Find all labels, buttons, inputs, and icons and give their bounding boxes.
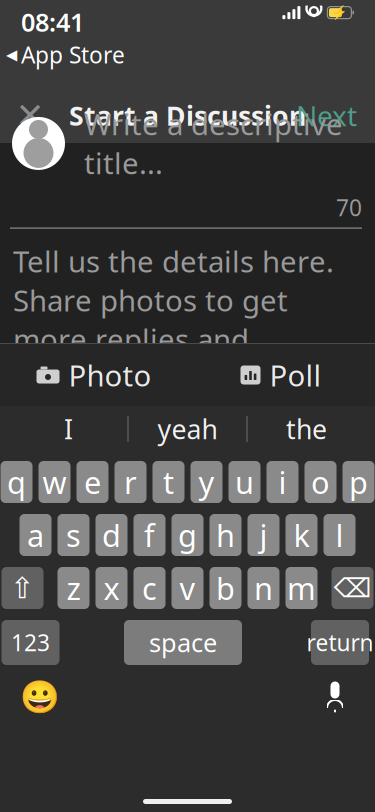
staticText: n: [254, 568, 273, 608]
staticText: x: [103, 568, 119, 608]
button[interactable]: Photo: [0, 344, 187, 406]
staticText: h: [216, 515, 235, 555]
button[interactable]: Shift: [1, 567, 43, 609]
button[interactable]: m: [285, 567, 317, 609]
staticText: 😀: [20, 679, 60, 715]
staticText: u: [235, 462, 254, 502]
button[interactable]: Next: [282, 89, 371, 141]
button[interactable]: l: [323, 514, 355, 556]
staticText: i: [278, 462, 286, 502]
button[interactable]: y: [190, 461, 222, 503]
button[interactable]: k: [285, 514, 317, 556]
staticText: ✕: [15, 96, 44, 135]
button[interactable]: b: [209, 567, 241, 609]
staticText: Start a Discussion: [69, 98, 306, 133]
button[interactable]: Dictate: [312, 677, 358, 717]
button[interactable]: return: [306, 620, 373, 665]
button[interactable]: o: [304, 461, 336, 503]
staticText: t: [163, 462, 174, 502]
staticText: 70: [336, 192, 362, 222]
button[interactable]: u: [228, 461, 260, 503]
staticText: ◀: [6, 46, 17, 63]
staticText: I: [64, 411, 73, 447]
staticText: ⌫: [333, 573, 371, 603]
staticText: q: [7, 462, 26, 502]
staticText: App Store: [21, 40, 125, 70]
staticText: l: [335, 515, 343, 555]
staticText: w: [42, 462, 66, 502]
button[interactable]: d: [95, 514, 127, 556]
staticText: s: [66, 515, 81, 555]
staticText: return: [306, 627, 373, 657]
staticText: v: [179, 568, 195, 608]
staticText: f: [144, 515, 155, 555]
button[interactable]: h: [209, 514, 241, 556]
button[interactable]: n: [247, 567, 279, 609]
staticText: d: [102, 515, 121, 555]
button[interactable]: q: [0, 461, 32, 503]
staticText: k: [293, 515, 309, 555]
staticText: g: [178, 515, 197, 555]
staticText: y: [198, 462, 214, 502]
button[interactable]: Emoji: [17, 677, 63, 717]
staticText: Write a descriptive title...: [84, 104, 343, 182]
staticText: Photo: [68, 355, 151, 394]
button[interactable]: 123: [1, 620, 59, 665]
button[interactable]: z: [57, 567, 89, 609]
staticText: o: [311, 462, 330, 502]
button[interactable]: yeah: [128, 406, 246, 452]
staticText: r: [124, 462, 137, 502]
staticText: 123: [11, 627, 50, 657]
button[interactable]: I: [9, 406, 127, 452]
staticText: Poll: [269, 355, 321, 394]
staticText: a: [27, 515, 44, 555]
button[interactable]: c: [133, 567, 165, 609]
button[interactable]: ◀: [6, 40, 125, 70]
staticText: Next: [296, 97, 357, 134]
staticText: b: [216, 568, 235, 608]
staticText: z: [66, 568, 80, 608]
button[interactable]: Delete: [331, 567, 373, 609]
button[interactable]: the: [247, 406, 365, 452]
staticText: the: [286, 411, 327, 447]
staticText: space: [149, 626, 217, 659]
button[interactable]: space: [124, 620, 242, 665]
staticText: Tell us the details here. Share photos t…: [13, 242, 334, 397]
staticText: j: [259, 515, 267, 555]
button[interactable]: Poll: [187, 344, 374, 406]
button[interactable]: i: [266, 461, 298, 503]
button[interactable]: a: [19, 514, 51, 556]
staticText: m: [287, 568, 316, 608]
button[interactable]: j: [247, 514, 279, 556]
button[interactable]: v: [171, 567, 203, 609]
button[interactable]: Close: [4, 89, 56, 141]
button[interactable]: x: [95, 567, 127, 609]
staticText: 08:41: [21, 5, 84, 39]
staticText: e: [84, 462, 101, 502]
button[interactable]: t: [152, 461, 184, 503]
button[interactable]: w: [38, 461, 70, 503]
staticText: yeah: [157, 411, 217, 447]
staticText: ⚡: [331, 5, 348, 20]
button[interactable]: f: [133, 514, 165, 556]
button[interactable]: r: [114, 461, 146, 503]
button[interactable]: s: [57, 514, 89, 556]
staticText: p: [349, 462, 368, 502]
button[interactable]: g: [171, 514, 203, 556]
staticText: ⇧: [10, 571, 35, 605]
button[interactable]: p: [342, 461, 374, 503]
button[interactable]: e: [76, 461, 108, 503]
staticText: c: [142, 568, 157, 608]
